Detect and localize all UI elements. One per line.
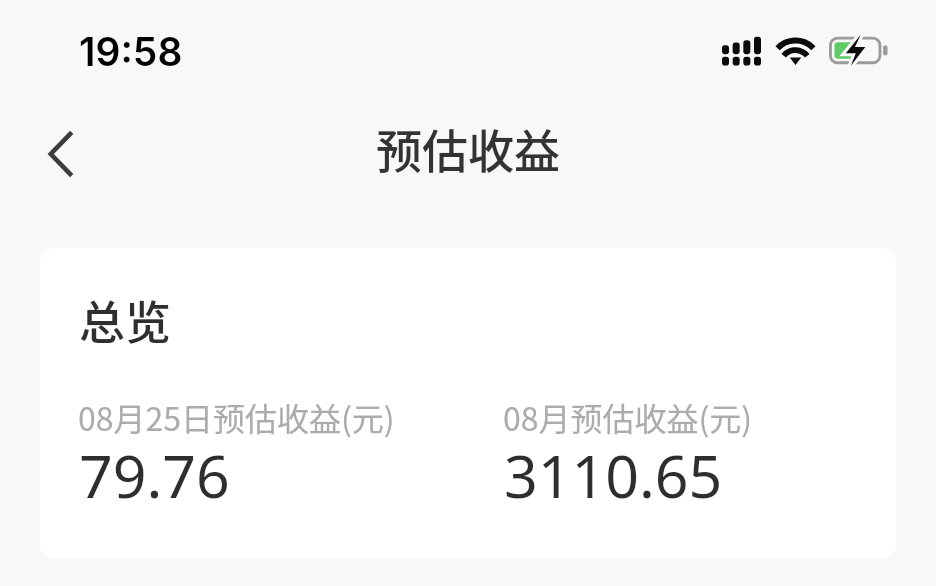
staticText: 08月25日预估收益(元) [78,394,395,440]
button[interactable]: 08月25日预估收益(元) [78,388,408,506]
button[interactable]: 08月预估收益(元) [503,388,833,506]
staticText: 19:58 [79,28,183,75]
staticText: 79.76 [79,435,230,515]
other: Mobile signal [722,36,761,65]
staticText: 预估收益 [376,115,560,182]
button[interactable]: Back [16,105,104,199]
staticText: 总览 [79,286,171,353]
other: Wi-Fi [777,36,814,65]
staticText: 08月预估收益(元) [503,394,753,440]
other: Battery charging [829,35,888,66]
staticText: 3110.65 [504,435,723,515]
